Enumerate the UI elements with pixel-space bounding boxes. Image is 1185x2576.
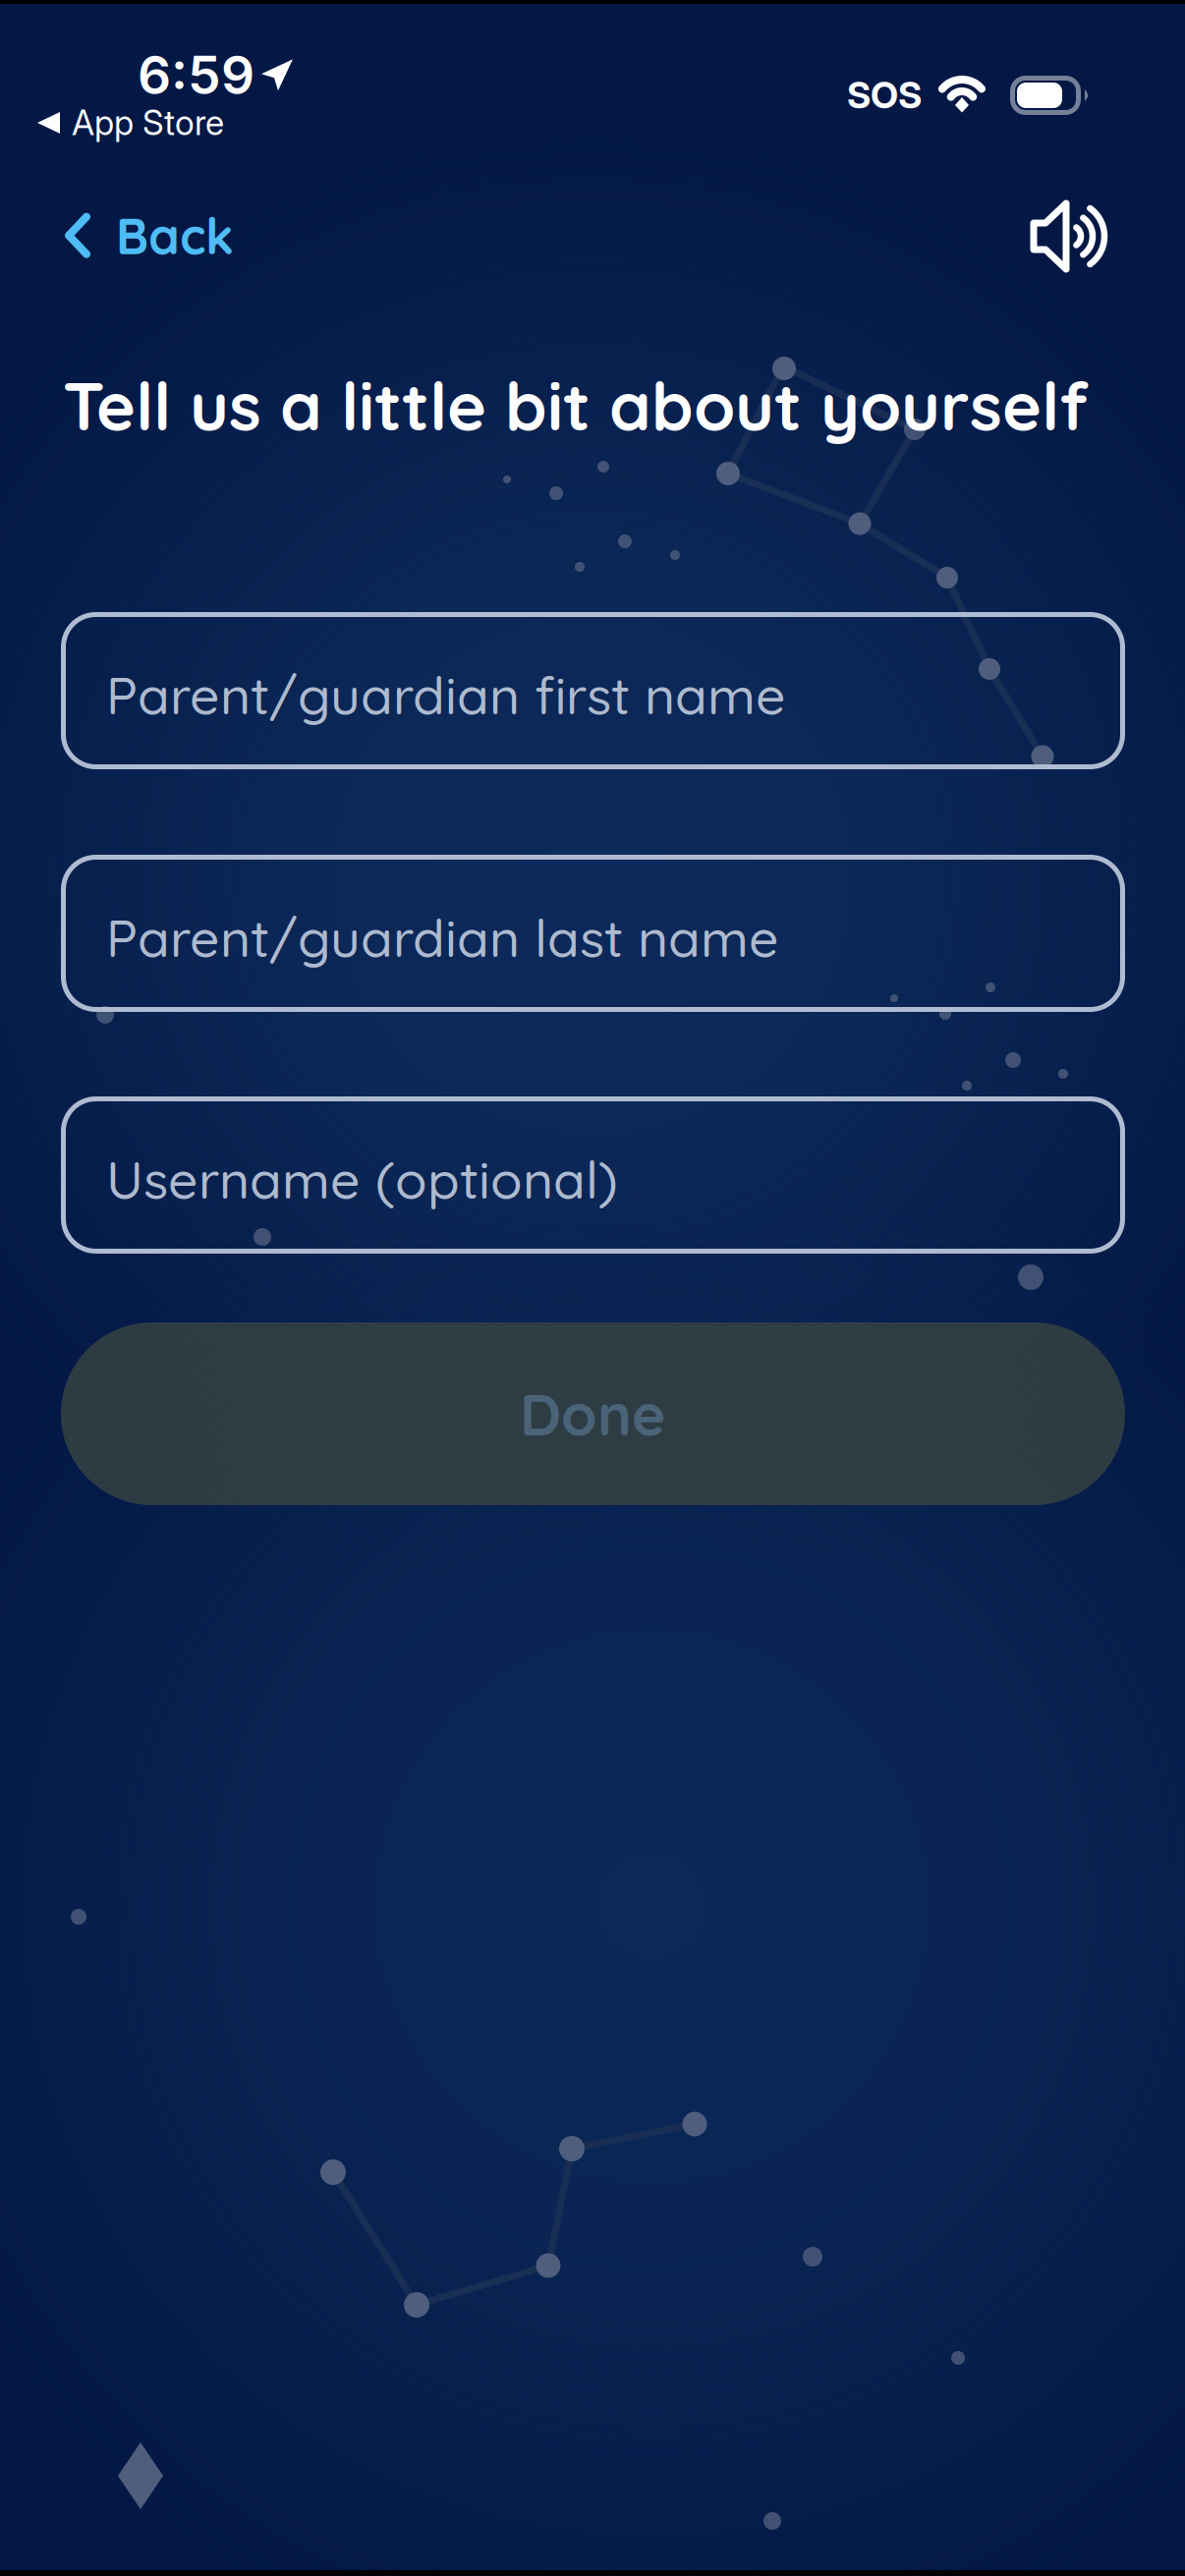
button[interactable]: Parent/guardian last name — [61, 855, 1125, 1012]
button[interactable]: Parent/guardian first name — [61, 612, 1125, 769]
button[interactable]: Sound — [999, 179, 1142, 295]
staticText: Back — [116, 204, 234, 267]
staticText: Parent/guardian first name — [106, 662, 786, 727]
staticText: 6:59 — [138, 43, 254, 107]
staticText: App Store — [72, 102, 224, 143]
staticText: Parent/guardian last name — [106, 905, 779, 970]
staticText: SOS — [847, 73, 922, 117]
staticText: Done — [520, 1378, 666, 1450]
button[interactable]: Username (optional) — [61, 1096, 1125, 1254]
staticText: Tell us a little bit about yourself — [63, 364, 1089, 447]
button[interactable]: Done — [61, 1322, 1125, 1505]
button[interactable]: Back — [9, 185, 263, 286]
staticText: Username (optional) — [106, 1146, 618, 1212]
